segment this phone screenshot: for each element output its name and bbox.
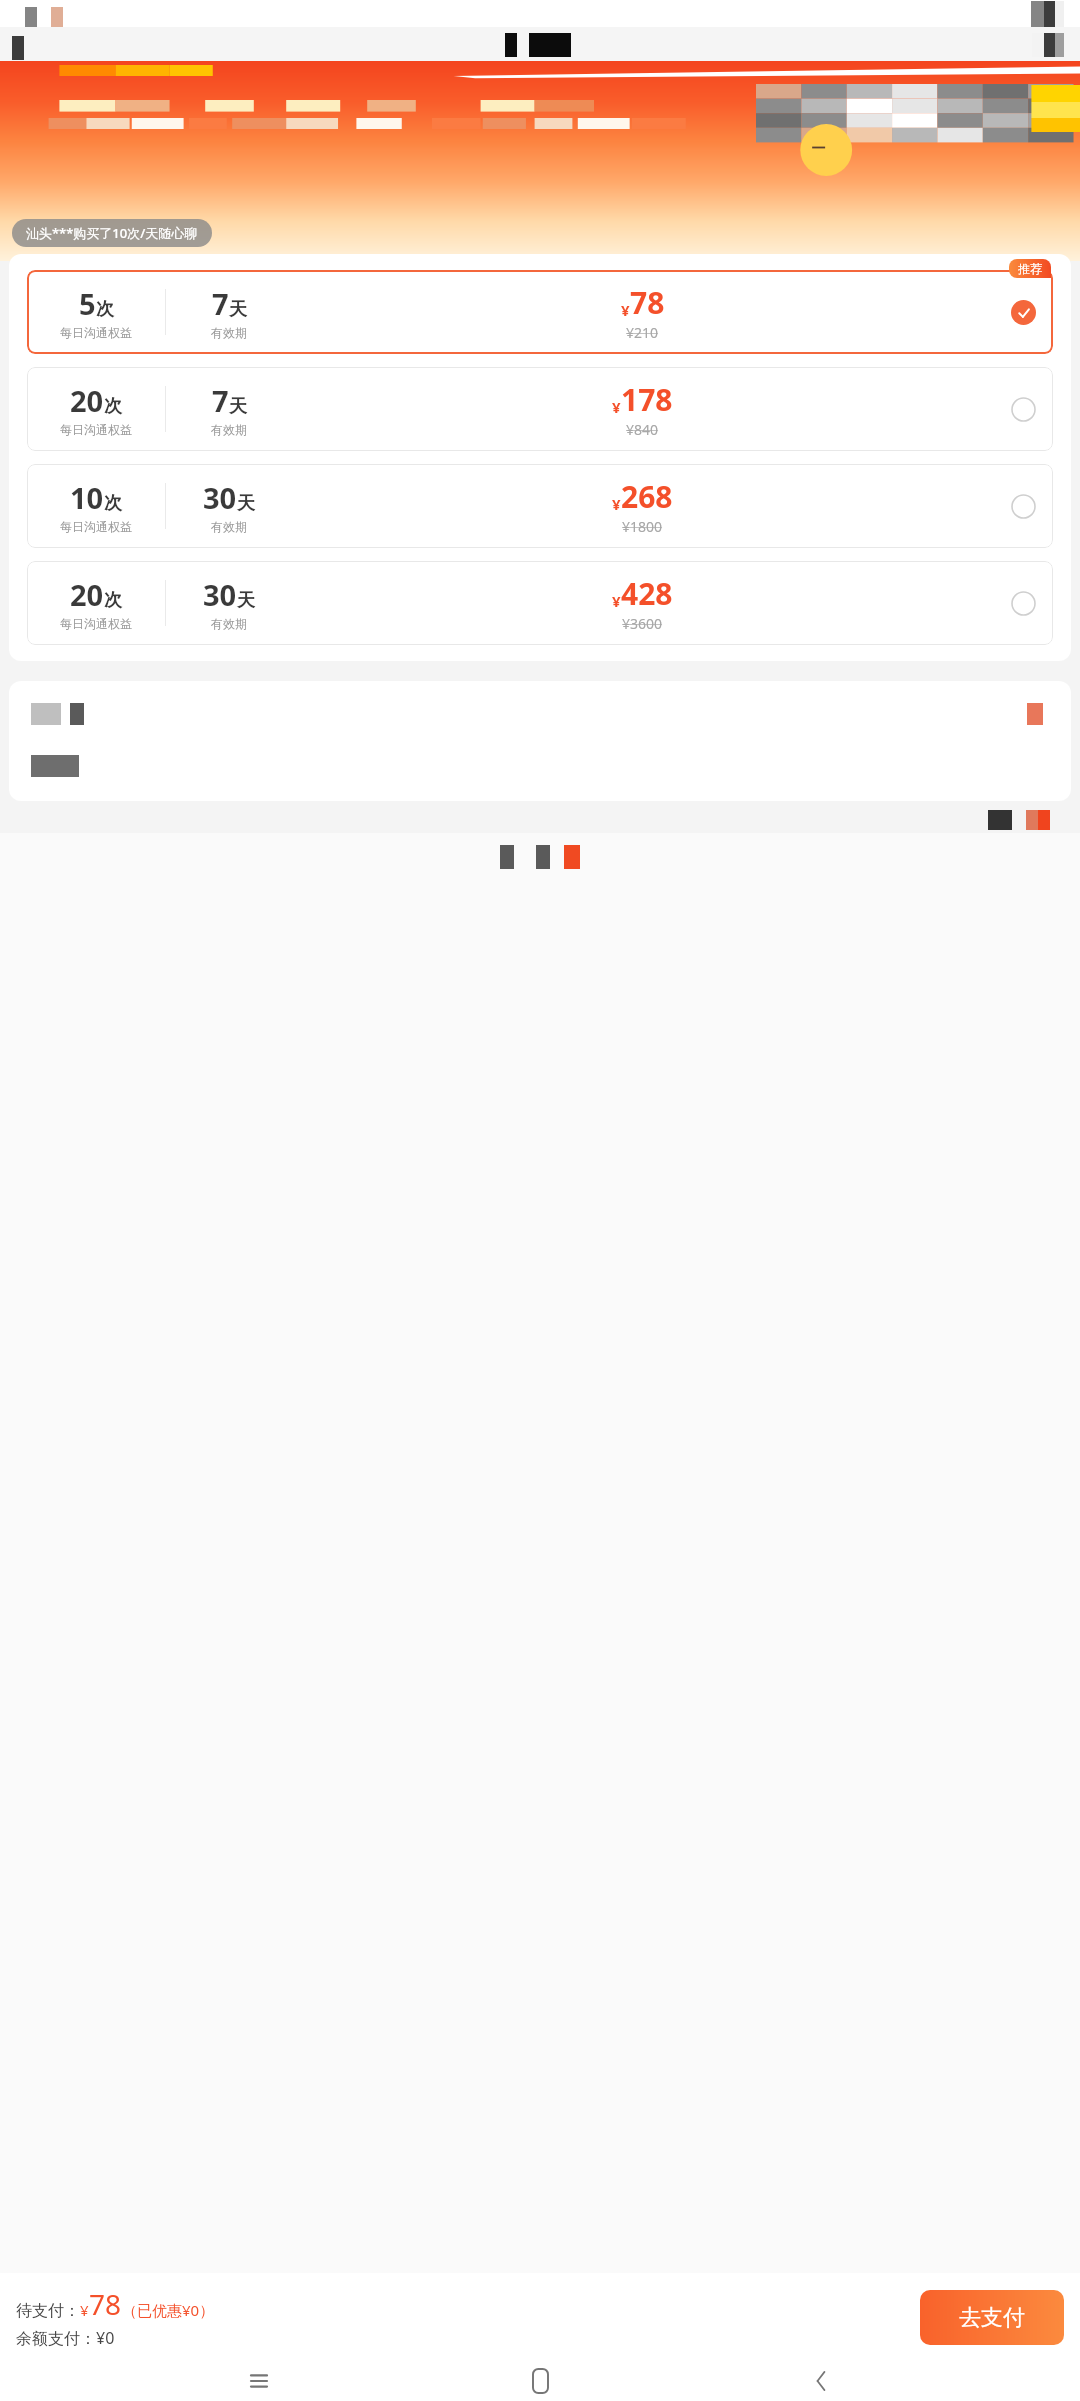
staticText: 每日沟通权益 — [60, 422, 132, 437]
staticText: 20 — [70, 381, 104, 420]
staticText: 有效期 — [211, 616, 247, 631]
staticText: 待支付： — [16, 2301, 80, 2321]
staticText: 汕头***购买了10次/天随心聊 — [26, 224, 198, 242]
button[interactable]: Home — [518, 2361, 562, 2401]
staticText: 天 — [237, 492, 255, 515]
staticText: 78 — [89, 2285, 122, 2323]
staticText: 178 — [621, 379, 673, 420]
staticText: 428 — [621, 573, 673, 614]
staticText: 10 — [70, 478, 104, 517]
staticText: 次 — [96, 298, 114, 321]
staticText: 去支付 — [959, 2304, 1025, 2332]
staticText: ¥ — [621, 300, 630, 320]
staticText: ¥ — [612, 591, 621, 611]
staticText: 天 — [229, 298, 247, 321]
staticText: 78 — [630, 282, 665, 323]
button[interactable]: Back — [799, 2361, 843, 2401]
staticText: 有效期 — [211, 519, 247, 534]
staticText: 每日沟通权益 — [60, 325, 132, 340]
staticText: ¥1800 — [622, 517, 663, 536]
staticText: 推荐 — [1018, 261, 1042, 276]
staticText: ¥ — [80, 2300, 89, 2320]
staticText: 7 — [212, 284, 229, 323]
staticText: 每日沟通权益 — [60, 519, 132, 534]
staticText: 7 — [212, 381, 229, 420]
staticText: ¥ — [612, 397, 621, 417]
staticText: ¥840 — [626, 420, 659, 439]
staticText: 30 — [203, 575, 237, 614]
staticText: 5 — [79, 284, 96, 323]
button[interactable]: 5 — [27, 270, 1053, 354]
staticText: ¥3600 — [622, 614, 663, 633]
staticText: 有效期 — [211, 325, 247, 340]
staticText: 次 — [104, 589, 122, 612]
staticText: （已优惠¥0） — [122, 2300, 215, 2320]
button[interactable]: Recents — [237, 2361, 281, 2401]
staticText: 天 — [237, 589, 255, 612]
staticText: 次 — [104, 492, 122, 515]
button[interactable]: 10 — [27, 464, 1053, 548]
staticText: 30 — [203, 478, 237, 517]
button[interactable]: 20 — [27, 367, 1053, 451]
staticText: 天 — [229, 395, 247, 418]
staticText: 268 — [621, 476, 673, 517]
staticText: 每日沟通权益 — [60, 616, 132, 631]
staticText: ¥ — [612, 494, 621, 514]
staticText: 有效期 — [211, 422, 247, 437]
staticText: 次 — [104, 395, 122, 418]
staticText: ¥210 — [626, 323, 659, 342]
button[interactable]: 20 — [27, 561, 1053, 645]
staticText: 20 — [70, 575, 104, 614]
button[interactable]: 去支付 — [920, 2290, 1064, 2345]
staticText: 余额支付：¥0 — [16, 2327, 115, 2349]
